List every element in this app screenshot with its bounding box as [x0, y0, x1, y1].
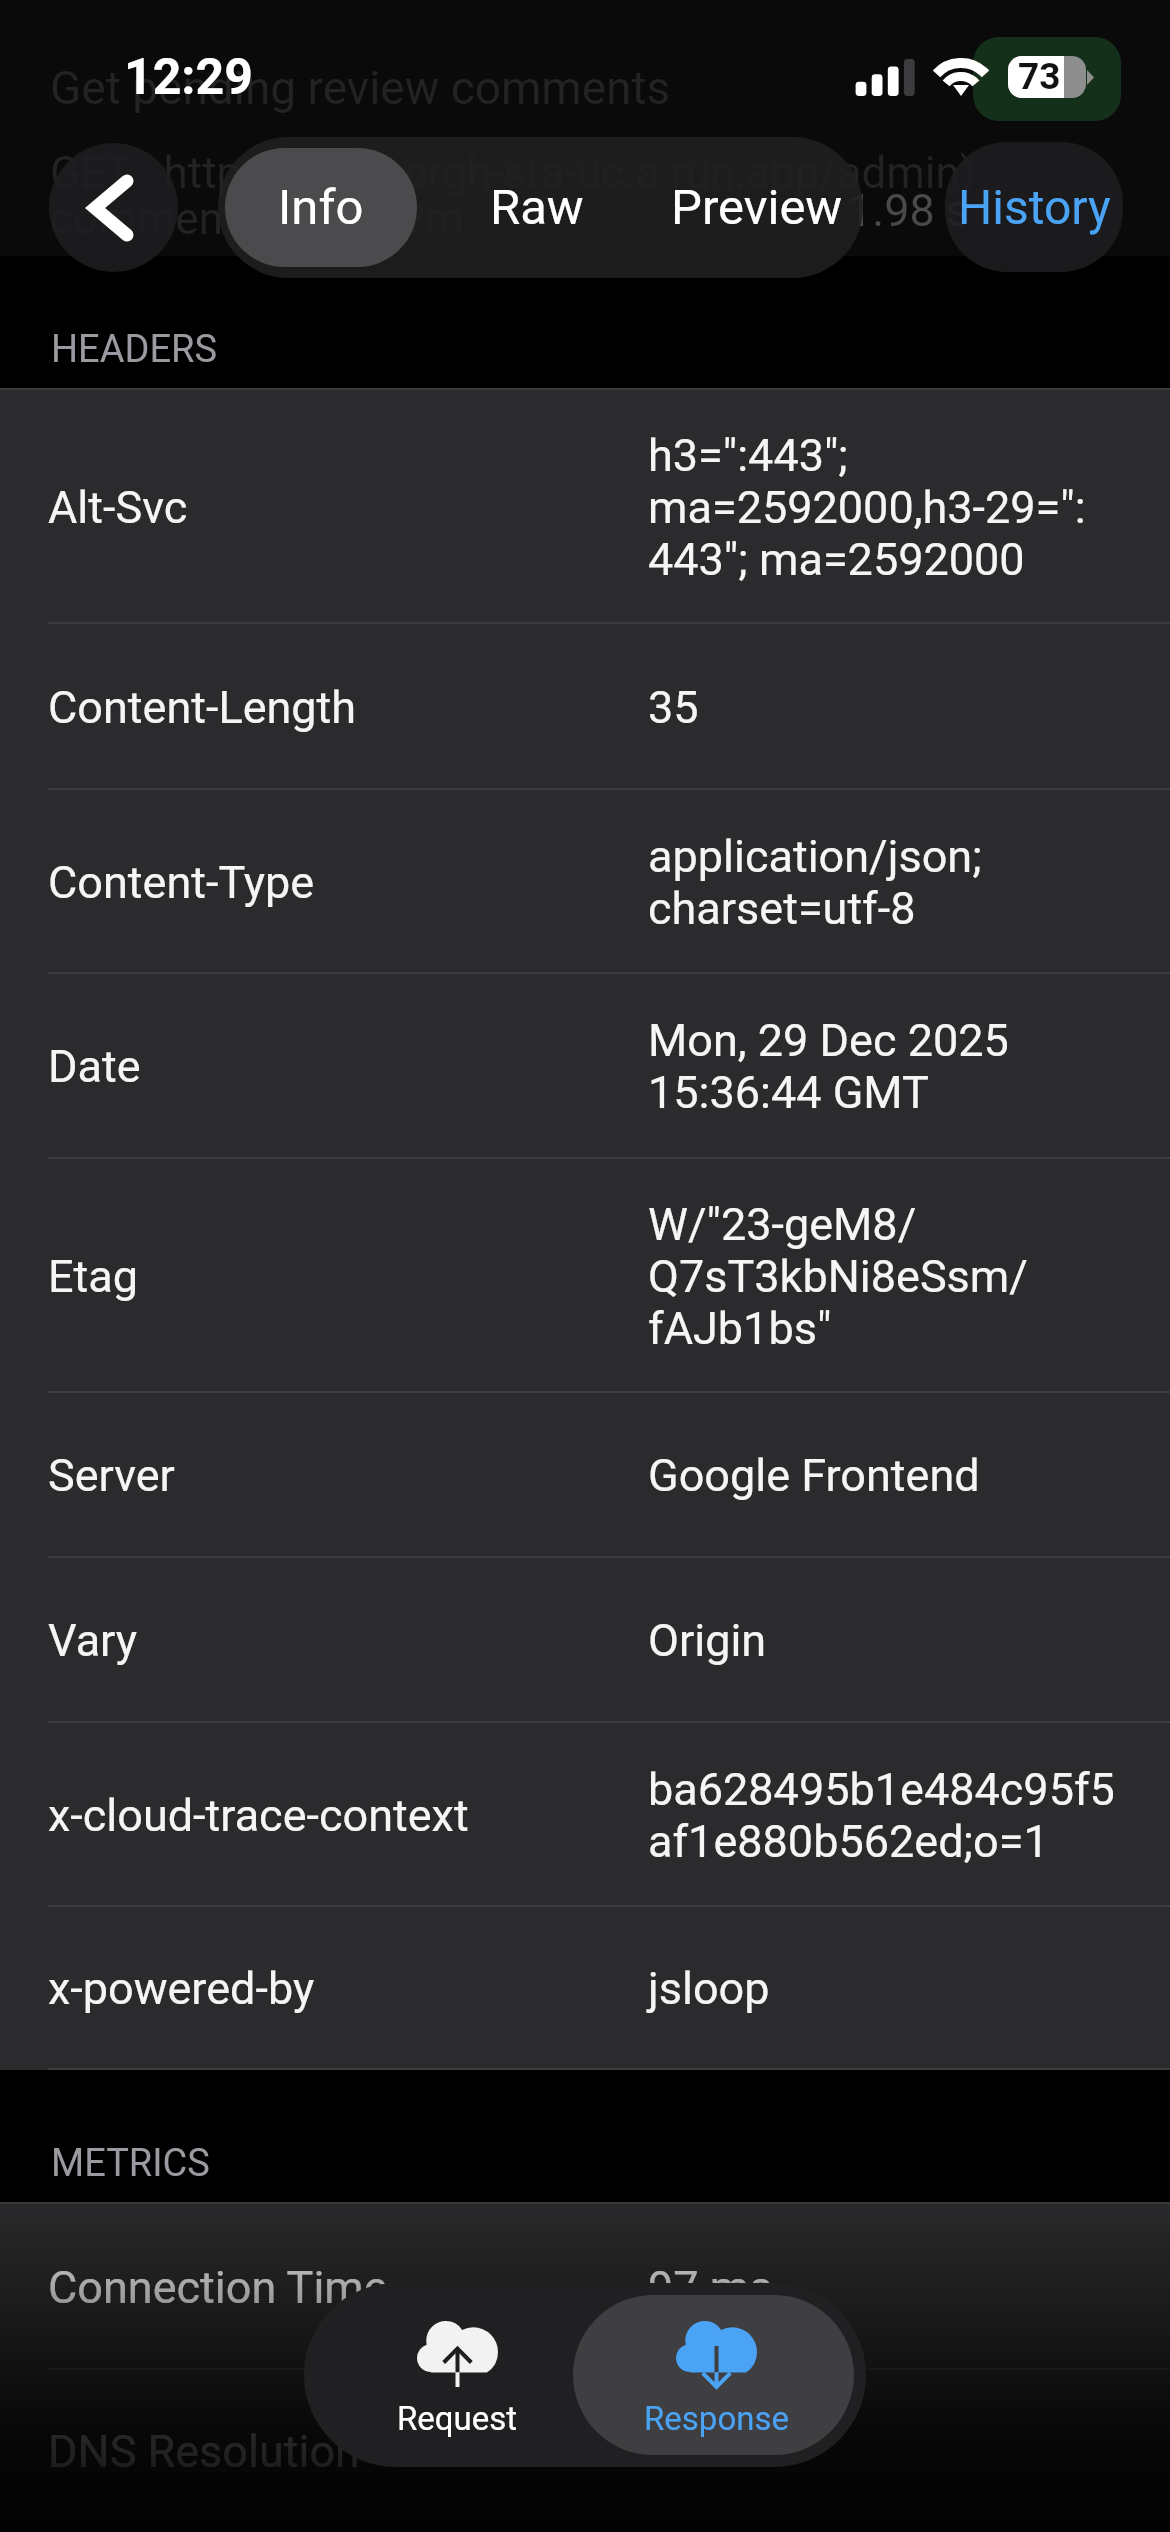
staticText: DNS Resolution — [48, 2425, 360, 2478]
staticText: HEADERS — [51, 327, 218, 372]
staticText: comments/review?m — [50, 193, 464, 245]
staticText: Get pending review comments — [50, 61, 671, 115]
staticText: W/"23-geM8/ Q7sT3kbNi8eSsm/ fAJb1bs" — [648, 1198, 1028, 1355]
button[interactable]: Preview — [657, 148, 856, 267]
staticText: Vary — [48, 1614, 138, 1667]
button[interactable]: Response — [573, 2295, 854, 2455]
staticText: Connection Time — [48, 2261, 388, 2314]
staticText: Google Frontend — [648, 1449, 980, 1502]
staticText: Etag — [48, 1250, 139, 1303]
button[interactable]: Info — [225, 148, 417, 267]
button[interactable]: Back — [49, 143, 178, 272]
staticText: Origin — [648, 1614, 767, 1667]
button[interactable]: Connection Time — [0, 2204, 1170, 2370]
button[interactable]: Date — [0, 974, 1170, 1159]
staticText: x-powered-by — [48, 1962, 315, 2015]
staticText: History — [958, 179, 1111, 235]
button[interactable]: Alt-Svc — [0, 390, 1170, 624]
staticText: jsloop — [648, 1962, 770, 2015]
staticText: x-cloud-trace-context — [48, 1789, 469, 1842]
button[interactable]: Vary — [0, 1558, 1170, 1723]
button[interactable]: x-cloud-trace-context — [0, 1723, 1170, 1907]
staticText: Alt-Svc — [48, 481, 188, 534]
staticText: Server — [48, 1449, 175, 1502]
staticText: h3=":443"; ma=2592000,h3-29=": 443"; ma=… — [648, 429, 1086, 586]
staticText: Response — [644, 2399, 789, 2438]
staticText: 12:29 — [124, 48, 253, 107]
staticText: ba628495b1e484c95f5 af1e880b562ed;o=1 — [648, 1763, 1115, 1868]
staticText: 97 ms — [648, 2261, 773, 2314]
button[interactable]: History — [945, 142, 1123, 272]
staticText: Date — [48, 1040, 141, 1093]
staticText: METRICS — [51, 2141, 210, 2186]
staticText: 73 — [1018, 56, 1061, 97]
staticText: Mon, 29 Dec 2025 15:36:44 GMT — [648, 1014, 1009, 1119]
button[interactable]: Content-Type — [0, 790, 1170, 974]
staticText: Content-Type — [48, 856, 315, 909]
staticText: application/json; charset=utf-8 — [648, 830, 982, 935]
staticText: GET https://lumbergh-sta-uc.a.run.app/ad… — [50, 147, 976, 199]
staticText: Raw — [490, 179, 584, 236]
button[interactable]: DNS Resolution — [0, 2370, 1170, 2532]
button[interactable]: Server — [0, 1393, 1170, 1558]
button[interactable]: Raw — [431, 148, 643, 267]
button[interactable]: Request — [316, 2295, 573, 2455]
staticText: 1.98 s — [847, 184, 970, 237]
staticText: Info — [278, 179, 364, 236]
staticText: Content-Length — [48, 681, 357, 734]
button[interactable]: x-powered-by — [0, 1907, 1170, 2070]
staticText: Request — [397, 2399, 518, 2438]
staticText: 35 — [648, 681, 699, 734]
staticText: 12 ms — [648, 2425, 773, 2478]
button[interactable]: Content-Length — [0, 624, 1170, 790]
staticText: Preview — [671, 179, 843, 236]
button[interactable]: Etag — [0, 1159, 1170, 1393]
